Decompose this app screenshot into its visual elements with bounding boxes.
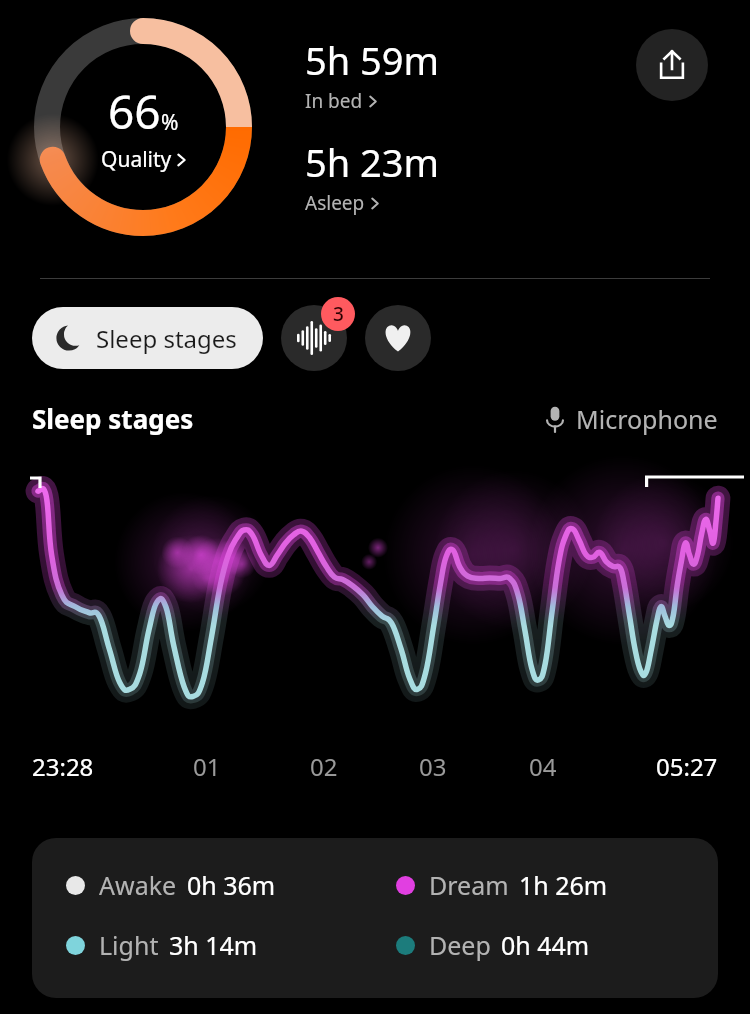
staticText: Deep — [429, 928, 491, 962]
staticText: % — [161, 108, 179, 137]
staticText: Microphone — [576, 402, 718, 436]
staticText: Quality — [101, 145, 172, 174]
staticText: Sleep stages — [32, 401, 194, 436]
button[interactable]: Microphone — [544, 402, 718, 436]
staticText: 01 — [193, 750, 221, 783]
button[interactable]: Sleep stages — [32, 307, 263, 369]
button[interactable]: Heart rate — [365, 305, 431, 371]
button[interactable]: Share — [636, 29, 708, 101]
button[interactable]: Sleep recordings — [281, 305, 347, 371]
staticText: In bed — [305, 88, 363, 114]
staticText: 5h 59m — [305, 34, 440, 86]
staticText: 3h 14m — [169, 928, 258, 962]
staticText: Asleep — [305, 190, 365, 216]
staticText: 0h 44m — [501, 928, 590, 962]
button[interactable]: 66 — [24, 8, 262, 246]
button[interactable] — [0, 462, 750, 742]
button[interactable]: 5h 23m — [305, 136, 440, 216]
staticText: 0h 36m — [187, 868, 276, 902]
button[interactable]: Awake — [32, 838, 718, 998]
staticText: 1h 26m — [519, 868, 608, 902]
staticText: Sleep stages — [96, 322, 237, 355]
staticText: 5h 23m — [305, 136, 440, 188]
staticText: 3 — [333, 301, 344, 327]
staticText: Light — [99, 928, 159, 962]
staticText: 05:27 — [656, 750, 718, 783]
staticText: Dream — [429, 868, 509, 902]
staticText: 66 — [108, 80, 161, 143]
staticText: Awake — [99, 868, 177, 902]
staticText: 04 — [529, 750, 557, 783]
staticText: 03 — [419, 750, 447, 783]
button[interactable]: 5h 59m — [305, 34, 440, 114]
staticText: 23:28 — [32, 750, 94, 783]
staticText: 02 — [310, 750, 338, 783]
